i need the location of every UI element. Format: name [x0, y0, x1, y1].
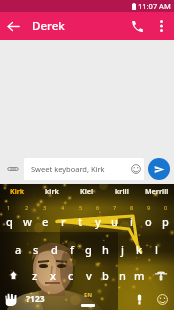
- button[interactable]: l: [148, 236, 165, 262]
- button[interactable]: b: [97, 262, 114, 288]
- staticText: n: [119, 268, 126, 283]
- button[interactable]: Attach: [2, 158, 24, 180]
- button[interactable]: Send: [148, 158, 170, 180]
- staticText: h: [102, 242, 109, 257]
- staticText: z: [32, 268, 38, 283]
- button[interactable]: Sweet keyboard, Kirk: [24, 158, 144, 180]
- button[interactable]: Back: [0, 13, 26, 39]
- button[interactable]: Voice input: [128, 288, 150, 310]
- staticText: EN: [84, 291, 93, 299]
- button[interactable]: c: [62, 262, 80, 288]
- button[interactable]: Space: [48, 288, 128, 310]
- staticText: 5: [79, 204, 83, 211]
- button[interactable]: 7: [106, 199, 123, 236]
- staticText: t: [78, 214, 83, 229]
- button[interactable]: d: [45, 236, 63, 262]
- button[interactable]: a: [9, 236, 27, 262]
- staticText: Kirk: [10, 187, 25, 197]
- staticText: ?123: [26, 293, 45, 305]
- button[interactable]: 6: [89, 199, 106, 236]
- button[interactable]: s: [27, 236, 45, 262]
- button[interactable]: More options: [150, 15, 172, 37]
- button[interactable]: krill: [104, 184, 139, 199]
- button[interactable]: Kiel: [69, 184, 104, 199]
- button[interactable]: g: [80, 236, 97, 262]
- staticText: Derek: [32, 18, 65, 34]
- button[interactable]: Shift: [0, 262, 26, 288]
- button[interactable]: v: [80, 262, 97, 288]
- staticText: u: [111, 214, 118, 229]
- staticText: m: [134, 268, 145, 283]
- staticText: 2: [25, 204, 29, 211]
- staticText: j: [121, 242, 124, 257]
- staticText: 3: [43, 204, 47, 211]
- staticText: w: [23, 214, 32, 229]
- button[interactable]: Backspace: [148, 262, 174, 288]
- staticText: 0: [164, 204, 168, 211]
- button[interactable]: 5: [72, 199, 89, 236]
- staticText: 7: [113, 204, 117, 211]
- staticText: g: [85, 242, 92, 257]
- staticText: i: [130, 214, 133, 229]
- button[interactable]: k: [131, 236, 148, 262]
- staticText: 6: [96, 204, 100, 211]
- button[interactable]: 3: [36, 199, 54, 236]
- button[interactable]: Call: [124, 13, 150, 39]
- staticText: d: [51, 242, 58, 257]
- staticText: q: [6, 214, 13, 229]
- button[interactable]: kirk: [34, 184, 69, 199]
- staticText: 4: [61, 204, 65, 211]
- button[interactable]: Kirk: [0, 184, 34, 199]
- staticText: b: [102, 268, 109, 283]
- button[interactable]: 0: [157, 199, 174, 236]
- staticText: c: [68, 268, 74, 283]
- staticText: x: [50, 268, 56, 283]
- button[interactable]: x: [44, 262, 62, 288]
- button[interactable]: Vulcan salute: [0, 288, 22, 310]
- button[interactable]: Merrill: [139, 184, 174, 199]
- button[interactable]: 8: [123, 199, 140, 236]
- staticText: a: [15, 242, 22, 257]
- staticText: y: [95, 214, 101, 229]
- button[interactable]: 9: [140, 199, 157, 236]
- button[interactable]: 2: [18, 199, 36, 236]
- staticText: f: [70, 242, 74, 257]
- button[interactable]: m: [131, 262, 148, 288]
- staticText: 8: [130, 204, 134, 211]
- staticText: 11:07 AM: [138, 1, 171, 11]
- staticText: Sweet keyboard, Kirk: [31, 164, 131, 174]
- staticText: 9: [147, 204, 151, 211]
- staticText: o: [145, 214, 152, 229]
- button[interactable]: h: [97, 236, 114, 262]
- staticText: kirk: [45, 187, 59, 197]
- button[interactable]: Emoji: [150, 288, 174, 310]
- button[interactable]: 4: [54, 199, 72, 236]
- staticText: Kiel: [80, 187, 94, 197]
- staticText: e: [42, 214, 49, 229]
- staticText: krill: [115, 187, 129, 197]
- staticText: s: [33, 242, 39, 257]
- button[interactable]: n: [114, 262, 131, 288]
- staticText: 1: [7, 204, 11, 211]
- staticText: p: [162, 214, 169, 229]
- button[interactable]: f: [63, 236, 80, 262]
- button[interactable]: j: [114, 236, 131, 262]
- button[interactable]: z: [26, 262, 44, 288]
- button[interactable]: ?123: [22, 288, 48, 310]
- staticText: l: [155, 242, 158, 257]
- staticText: k: [136, 242, 143, 257]
- button[interactable]: 1: [0, 199, 18, 236]
- staticText: r: [61, 214, 66, 229]
- staticText: v: [86, 268, 92, 283]
- staticText: Merrill: [145, 187, 169, 197]
